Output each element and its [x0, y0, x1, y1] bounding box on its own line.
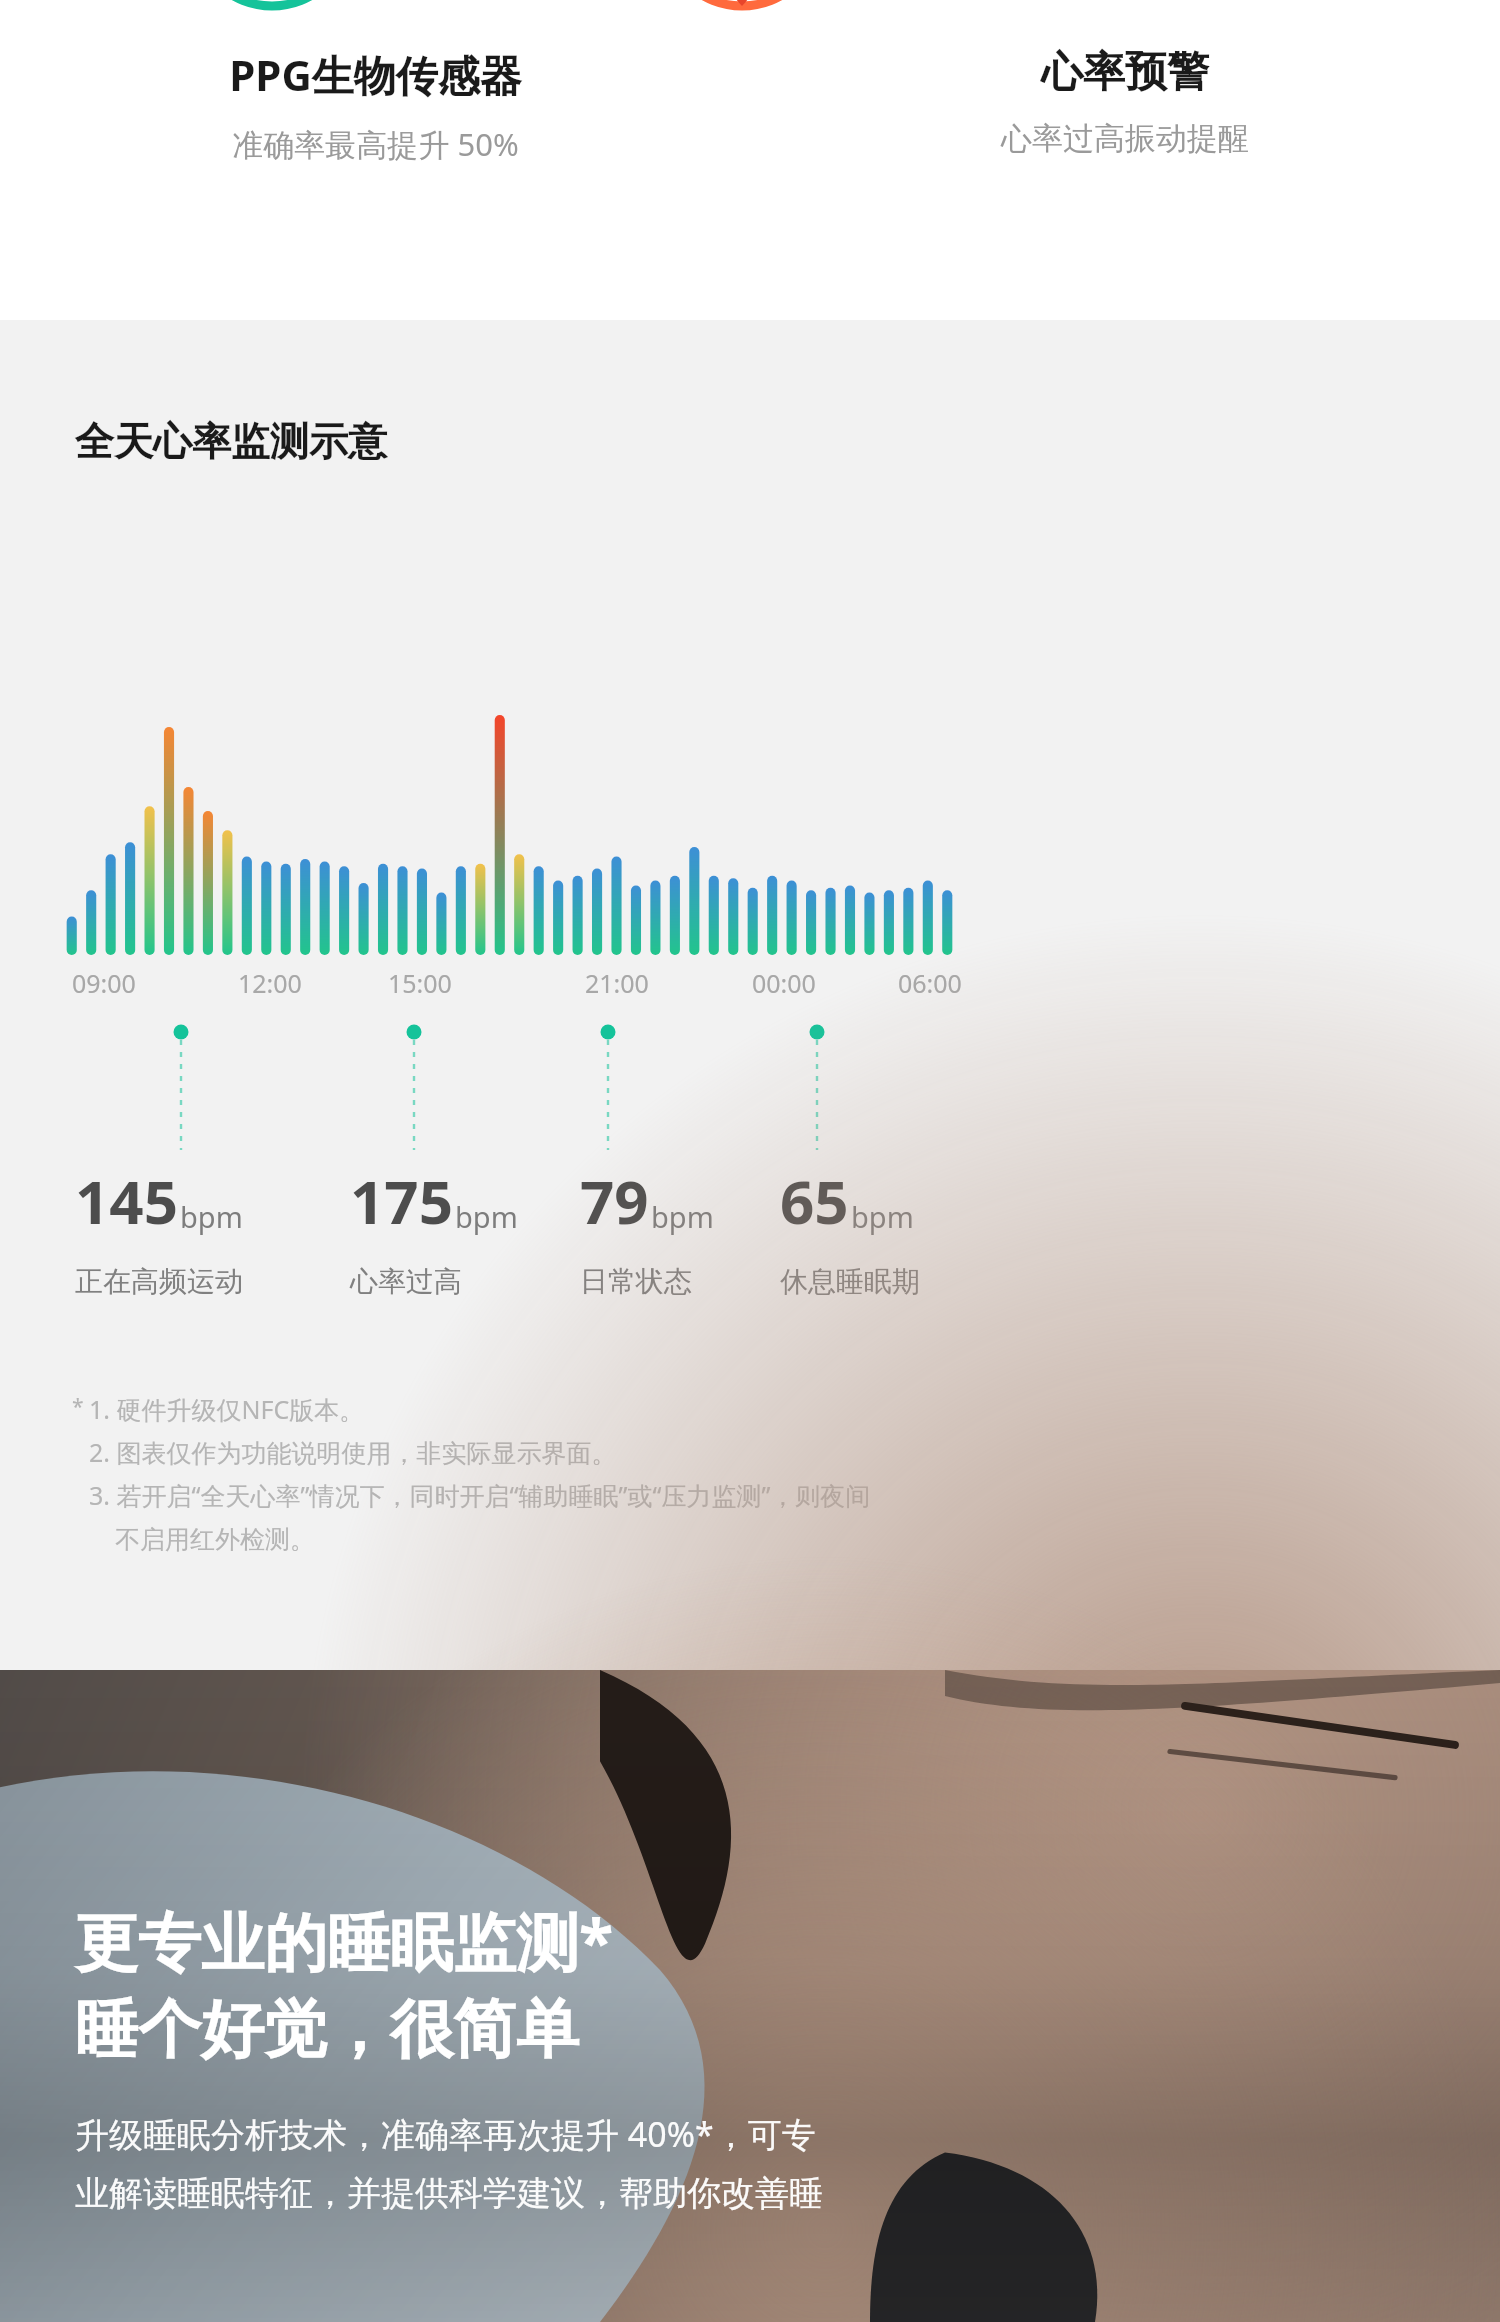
staticText: 全天心率监测示意	[75, 417, 387, 466]
staticText: 升级睡眠分析技术，准确率再次提升 40%*，可专 业解读睡眠特征，并提供科学建议…	[75, 2111, 955, 2215]
staticText: 09:00	[72, 966, 136, 1000]
staticText: 65	[780, 1160, 849, 1242]
staticText: 145	[75, 1160, 178, 1242]
staticText: 心率过高振动提醒	[1001, 119, 1249, 158]
staticText: 日常状态	[580, 1264, 692, 1299]
staticText: 更专业的睡眠监测*	[75, 1898, 614, 1984]
staticText: bpm	[180, 1197, 243, 1236]
staticText: 心率预警	[1041, 46, 1209, 99]
staticText: 175	[350, 1160, 453, 1242]
staticText: 心率过高	[350, 1264, 462, 1299]
staticText: 12:00	[238, 966, 302, 1000]
staticText: 06:00	[898, 966, 962, 1000]
staticText: 00:00	[752, 966, 816, 1000]
staticText: 1. 硬件升级仅NFC版本。	[89, 1392, 365, 1426]
staticText: bpm	[851, 1197, 914, 1236]
staticText: 休息睡眠期	[780, 1264, 920, 1299]
staticText: 睡个好觉，很简单	[75, 1990, 579, 2069]
staticText: bpm	[651, 1197, 714, 1236]
staticText: 准确率最高提升 50%	[232, 123, 519, 165]
button[interactable]: PPG生物传感器	[0, 0, 750, 165]
staticText: 正在高频运动	[75, 1264, 243, 1299]
staticText: bpm	[455, 1197, 518, 1236]
staticText: PPG生物传感器	[229, 46, 522, 103]
button[interactable]: 心率预警	[750, 0, 1500, 158]
staticText: 3. 若开启“全天心率”情况下，同时开启“辅助睡眠”或“压力监测”，则夜间 不启…	[89, 1478, 944, 1555]
staticText: 2. 图表仅作为功能说明使用，非实际显示界面。	[89, 1435, 617, 1469]
staticText: 79	[580, 1160, 649, 1242]
staticText: *	[72, 1392, 84, 1421]
staticText: 15:00	[388, 966, 452, 1000]
staticText: 21:00	[585, 966, 649, 1000]
